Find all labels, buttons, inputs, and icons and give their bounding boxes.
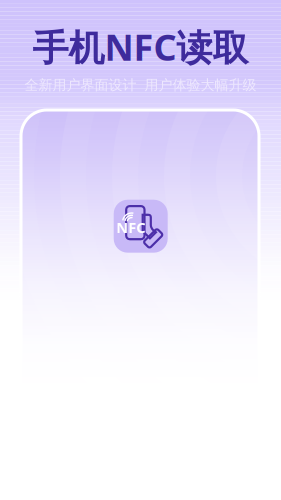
staticText: 全新用户界面设计 用户体验大幅升级 [24,76,256,94]
staticText: 手机NFC读取 [32,22,248,71]
staticText: NFC [116,217,145,237]
